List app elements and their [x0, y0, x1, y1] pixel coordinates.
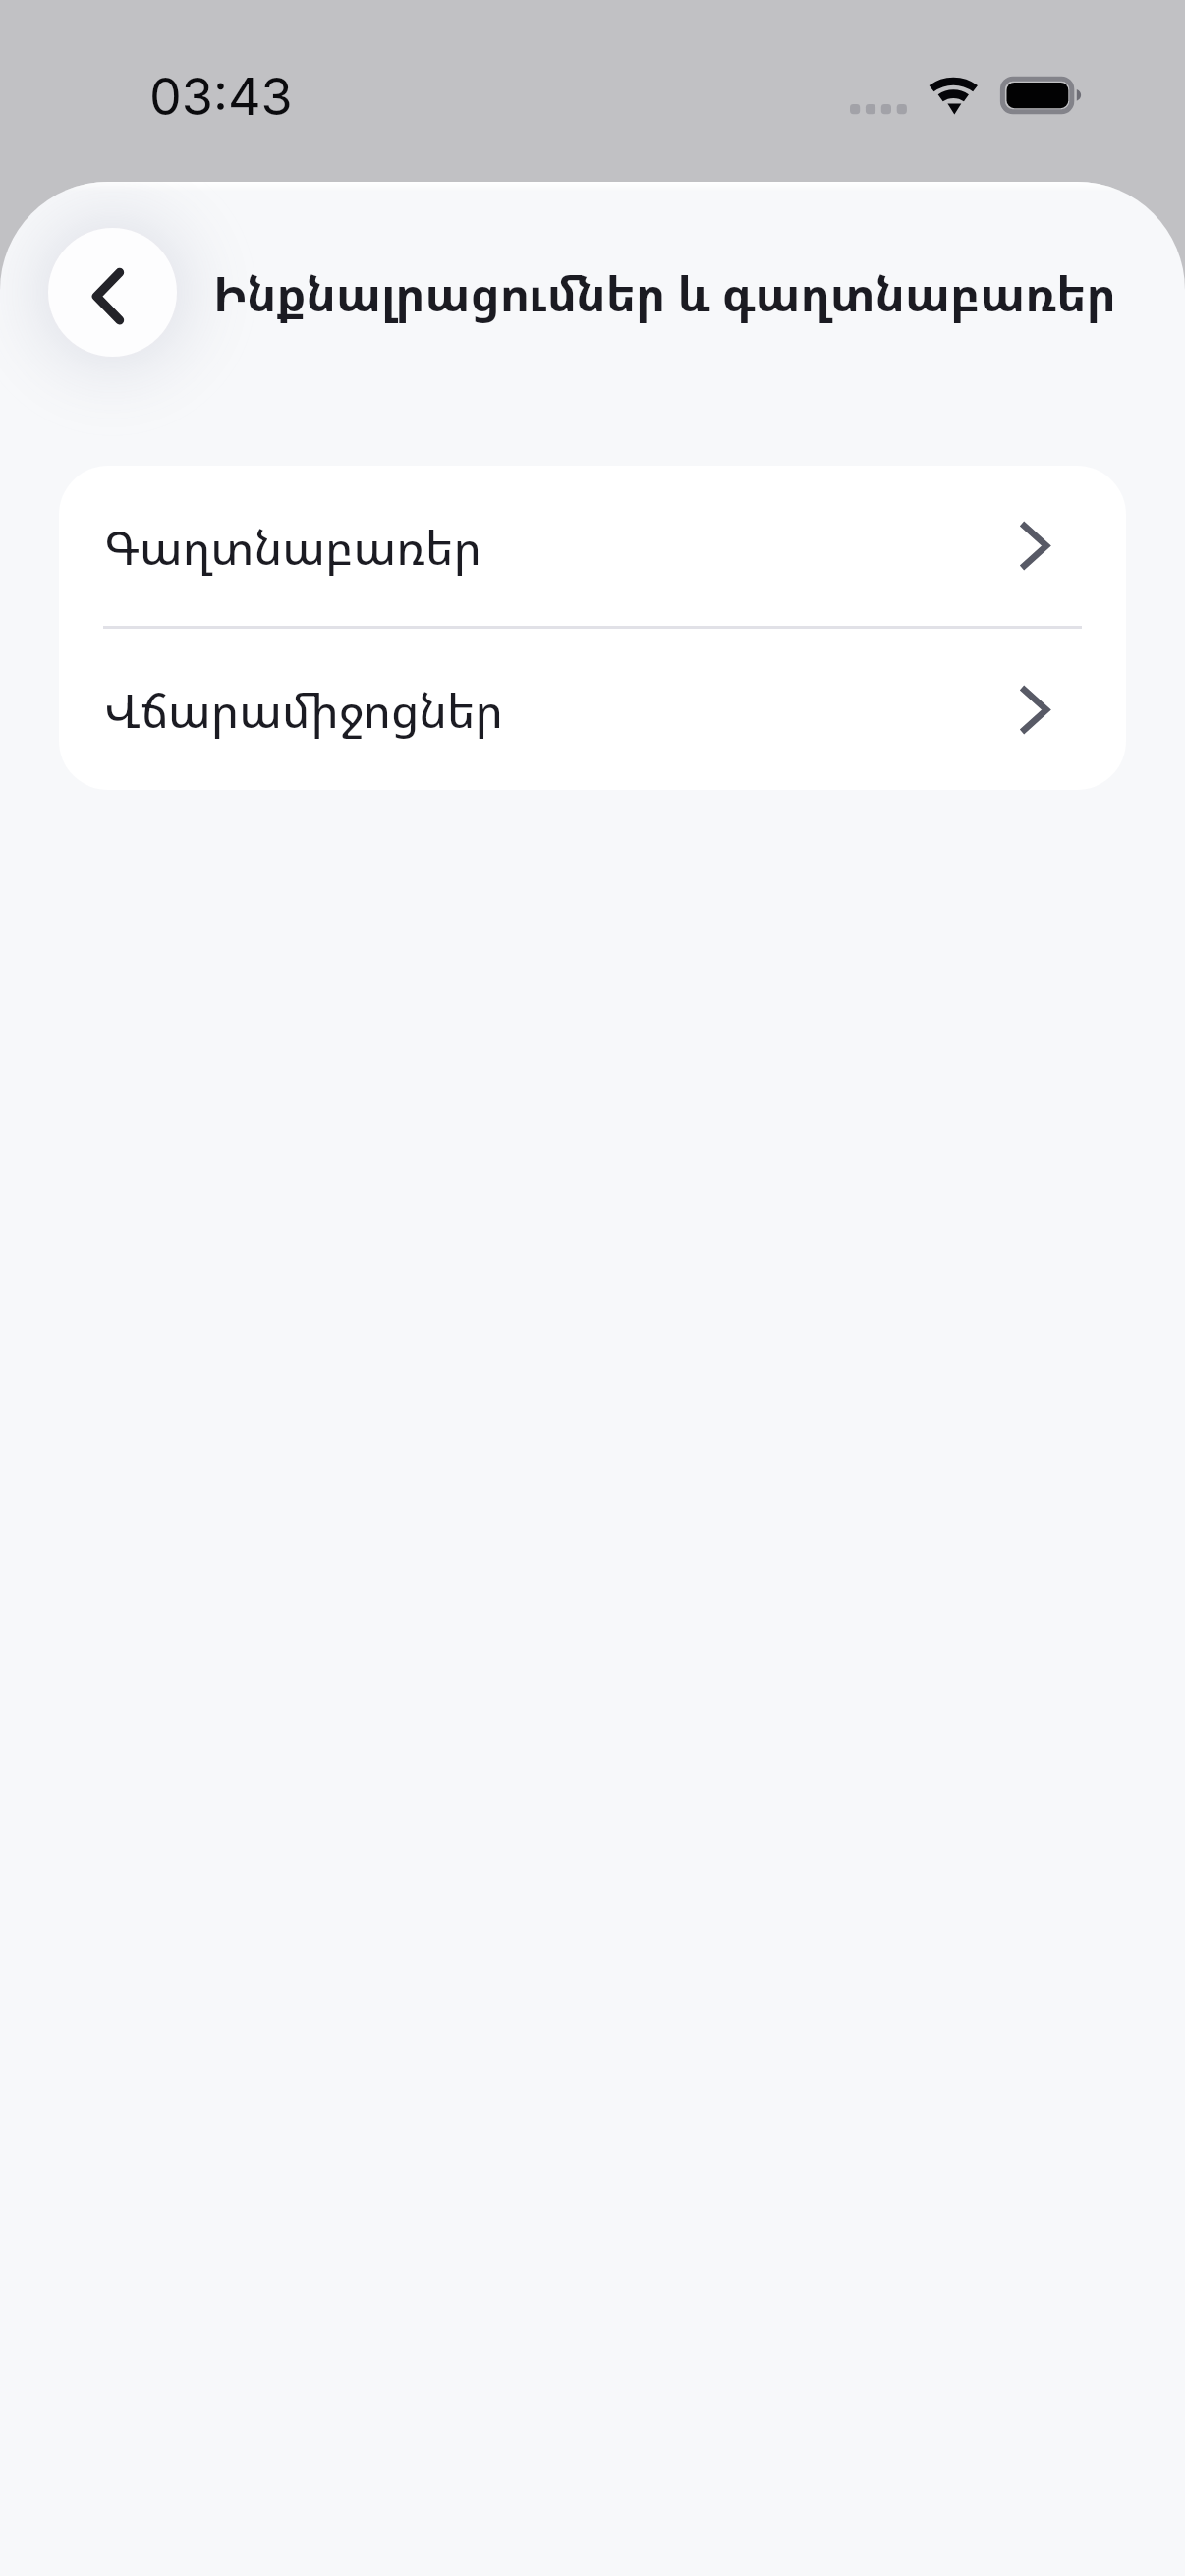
- button[interactable]: Վճարամիջոցներ: [59, 629, 1126, 790]
- button[interactable]: Back: [48, 228, 177, 357]
- staticText: Վճարամիջոցներ: [104, 678, 503, 741]
- staticText: Ինքնալրացումներ և գաղտնաբառեր: [213, 260, 1116, 325]
- staticText: 03:43: [149, 66, 293, 128]
- staticText: Գաղտնաբառեր: [104, 515, 481, 578]
- button[interactable]: Գաղտնաբառեր: [59, 466, 1126, 626]
